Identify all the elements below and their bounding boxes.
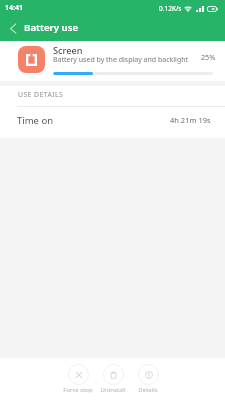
staticText: Battery use	[24, 21, 79, 34]
staticText: 14:41	[5, 3, 23, 13]
button[interactable]: Force stop	[61, 358, 95, 394]
staticText: Time on	[17, 114, 54, 127]
button[interactable]: Details	[131, 358, 165, 394]
staticText: Details	[131, 386, 165, 394]
staticText: Force stop	[61, 386, 95, 394]
staticText: Uninstall	[96, 386, 130, 394]
button[interactable]: Uninstall	[96, 358, 130, 394]
button[interactable]: Time on	[0, 107, 225, 133]
staticText: 4h 21m 19s	[170, 115, 211, 125]
staticText: 0.12K/s	[159, 4, 182, 13]
staticText: Battery used by the display and backligh…	[53, 55, 189, 65]
button[interactable]: Back	[1, 16, 25, 41]
staticText: Screen	[53, 44, 83, 57]
button[interactable]: Screen	[0, 41, 225, 81]
staticText: 25%	[201, 52, 216, 62]
staticText: USE DETAILS	[18, 90, 64, 99]
